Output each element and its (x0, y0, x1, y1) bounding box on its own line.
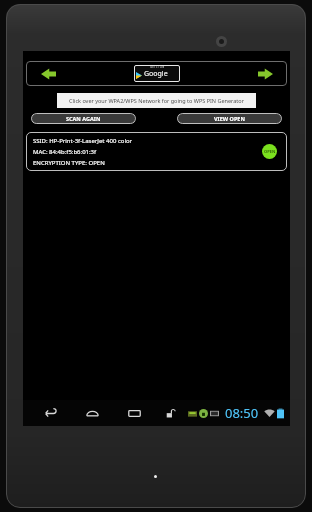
button[interactable]: Home (79, 400, 105, 426)
staticText: 08:50 (225, 404, 259, 422)
staticText: MAC: 84:4b:f5:b6:01:3f (33, 148, 97, 156)
button[interactable]: Get it on Google Play (134, 65, 180, 82)
button[interactable]: Next (253, 64, 277, 84)
staticText: ENCRYPTION TYPE: OPEN (33, 159, 105, 167)
button[interactable]: Recent apps (121, 400, 147, 426)
button[interactable]: SSID: HP-Print-3f-LaserJet 400 color (26, 132, 287, 171)
staticText: Google Play (144, 69, 178, 82)
staticText: Click over your WPA2/WPS Network for goi… (69, 97, 244, 104)
button[interactable]: VIEW OPEN (177, 113, 282, 124)
staticText: OPEN (264, 149, 276, 154)
button[interactable]: Unlocked (159, 402, 181, 424)
staticText: SCAN AGAIN (66, 115, 101, 122)
button[interactable]: Back (37, 400, 63, 426)
staticText: GET IT ON (150, 65, 165, 69)
staticText: VIEW OPEN (214, 115, 245, 122)
staticText: SSID: HP-Print-3f-LaserJet 400 color (33, 137, 133, 145)
button[interactable]: SCAN AGAIN (31, 113, 136, 124)
button[interactable]: Previous (36, 64, 60, 84)
